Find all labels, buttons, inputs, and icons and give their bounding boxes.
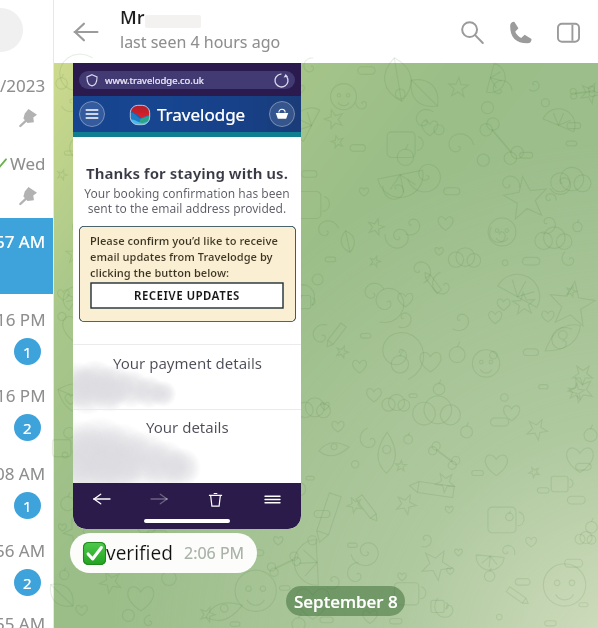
staticText: verified xyxy=(106,540,173,566)
staticText: 57 AM xyxy=(0,230,46,253)
button[interactable]: 16 PM xyxy=(0,372,53,448)
button[interactable]: Menu xyxy=(79,101,105,127)
staticText: 16 PM xyxy=(0,384,46,407)
button[interactable]: www.travelodge.co.uk xyxy=(79,71,295,89)
button[interactable]: www.travelodge.co.uk xyxy=(73,63,301,529)
button[interactable]: Menu xyxy=(244,487,301,511)
button[interactable]: Back xyxy=(73,487,130,511)
staticText: 1 xyxy=(23,496,32,516)
button[interactable]: /2023 xyxy=(0,62,53,138)
button[interactable]: Delete xyxy=(187,487,244,511)
button[interactable]: Basket xyxy=(269,101,295,127)
staticText: Your details xyxy=(146,417,229,437)
button[interactable]: RECEIVE UPDATES xyxy=(91,283,283,308)
staticText: Mr xyxy=(120,5,145,30)
button[interactable]: Call xyxy=(500,12,540,52)
button[interactable]: Wed xyxy=(0,140,53,216)
staticText: Wed xyxy=(10,152,46,175)
staticText: 2 xyxy=(23,418,32,438)
staticText: RECEIVE UPDATES xyxy=(134,288,240,304)
staticText: /2023 xyxy=(0,74,46,97)
staticText: Thanks for staying with us. xyxy=(86,163,288,183)
button[interactable]: Back xyxy=(64,10,108,54)
button[interactable]: September 8 xyxy=(286,586,405,616)
staticText: Your payment details xyxy=(113,353,262,373)
button[interactable]: 08 AM xyxy=(0,450,53,526)
staticText: 2:06 PM xyxy=(184,542,245,564)
button[interactable]: Search xyxy=(452,12,492,52)
button[interactable]: Forward xyxy=(130,487,187,511)
staticText: 08 AM xyxy=(0,462,46,485)
staticText: September 8 xyxy=(294,590,398,613)
button[interactable]: Search chats xyxy=(0,8,23,52)
staticText: Travelodge xyxy=(157,103,246,126)
button[interactable]: 16 PM xyxy=(0,296,53,372)
button[interactable]: verified xyxy=(70,533,257,573)
staticText: Your booking confirmation has been sent … xyxy=(75,185,299,216)
button[interactable]: 55 AM xyxy=(0,600,53,628)
button[interactable]: Toggle sidebar xyxy=(548,12,588,52)
button[interactable]: 57 AM xyxy=(0,218,53,294)
staticText: 55 AM xyxy=(0,612,46,628)
staticText: 16 PM xyxy=(0,308,46,331)
staticText: 2 xyxy=(23,573,32,593)
staticText: last seen 4 hours ago xyxy=(120,31,281,53)
staticText: 1 xyxy=(23,342,32,362)
staticText: Please confirm you’d like to receive ema… xyxy=(90,233,292,280)
staticText: 56 AM xyxy=(0,539,46,562)
button[interactable]: 56 AM xyxy=(0,527,53,603)
staticText: www.travelodge.co.uk xyxy=(105,74,204,87)
